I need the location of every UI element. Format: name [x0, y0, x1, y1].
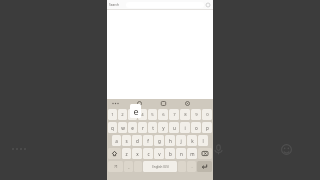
button[interactable]: b: [165, 148, 175, 159]
button[interactable]: 5: [148, 109, 157, 120]
button[interactable]: Voice input: [210, 141, 226, 157]
staticText: m: [190, 151, 195, 157]
button[interactable]: GIF: [159, 99, 168, 108]
button[interactable]: e: [128, 122, 137, 133]
staticText: English (US): [152, 165, 169, 169]
button[interactable]: r: [138, 122, 147, 133]
button[interactable]: More options: [111, 99, 120, 108]
staticText: f: [147, 138, 149, 144]
staticText: u: [173, 125, 176, 131]
staticText: q: [111, 125, 114, 131]
staticText: p: [206, 125, 209, 131]
staticText: 5: [151, 112, 154, 118]
button[interactable]: o: [191, 122, 201, 133]
button[interactable]: Shift: [108, 148, 121, 159]
staticText: x: [136, 151, 139, 157]
staticText: 2: [121, 112, 124, 118]
button[interactable]: f: [143, 135, 153, 146]
button[interactable]: l: [198, 135, 208, 146]
button[interactable]: z: [122, 148, 131, 159]
button[interactable]: Settings: [183, 99, 192, 108]
button[interactable]: 9: [191, 109, 201, 120]
staticText: 4: [141, 112, 144, 118]
button[interactable]: Backspace: [198, 148, 212, 159]
staticText: v: [158, 151, 161, 157]
staticText: c: [147, 151, 150, 157]
button[interactable]: Search: [109, 3, 125, 7]
staticText: 6: [162, 112, 165, 118]
staticText: ,: [128, 164, 130, 169]
button[interactable]: p: [202, 122, 212, 133]
button[interactable]: English (US): [143, 161, 177, 172]
button[interactable]: q: [108, 122, 117, 133]
button[interactable]: g: [154, 135, 164, 146]
button[interactable]: 3: [128, 109, 137, 120]
button[interactable]: Stickers: [135, 99, 144, 108]
button[interactable]: 0: [202, 109, 212, 120]
staticText: j: [180, 138, 182, 144]
button[interactable]: 1: [108, 109, 117, 120]
staticText: z: [125, 151, 128, 157]
button[interactable]: v: [154, 148, 164, 159]
button[interactable]: x: [132, 148, 142, 159]
staticText: t: [152, 125, 154, 131]
staticText: 8: [184, 112, 187, 118]
button[interactable]: Close: [205, 2, 211, 8]
staticText: s: [125, 138, 128, 144]
staticText: 0: [206, 112, 209, 118]
button[interactable]: j: [176, 135, 186, 146]
staticText: r: [142, 125, 144, 131]
staticText: i: [184, 125, 186, 131]
button[interactable]: n: [176, 148, 186, 159]
staticText: a: [115, 138, 118, 144]
staticText: w: [121, 125, 125, 131]
staticText: 7: [173, 112, 176, 118]
staticText: .: [191, 164, 193, 169]
staticText: 1: [111, 112, 114, 118]
staticText: Search: [109, 3, 120, 7]
button[interactable]: m: [187, 148, 197, 159]
button[interactable]: d: [132, 135, 142, 146]
staticText: y: [162, 125, 165, 131]
staticText: ?1: [114, 164, 118, 169]
staticText: h: [169, 138, 172, 144]
staticText: n: [180, 151, 183, 157]
button[interactable]: 8: [180, 109, 190, 120]
button[interactable]: Emoji: [278, 141, 294, 157]
staticText: e: [133, 105, 139, 117]
button[interactable]: t: [148, 122, 157, 133]
button[interactable]: 6: [158, 109, 168, 120]
button[interactable]: u: [169, 122, 179, 133]
button[interactable]: 7: [169, 109, 179, 120]
staticText: b: [169, 151, 172, 157]
button[interactable]: i: [180, 122, 190, 133]
staticText: d: [136, 138, 139, 144]
button[interactable]: ?1: [108, 161, 123, 172]
button[interactable]: a: [112, 135, 121, 146]
staticText: 9: [195, 112, 198, 118]
staticText: g: [158, 138, 161, 144]
button[interactable]: 4: [138, 109, 147, 120]
button[interactable]: y: [158, 122, 168, 133]
button[interactable]: k: [187, 135, 197, 146]
staticText: e: [131, 125, 134, 131]
button[interactable]: c: [143, 148, 153, 159]
button[interactable]: h: [165, 135, 175, 146]
staticText: o: [195, 125, 198, 131]
staticText: k: [191, 138, 194, 144]
button[interactable]: Enter: [197, 161, 212, 172]
button[interactable]: Recent apps: [10, 142, 28, 156]
button[interactable]: 2: [118, 109, 127, 120]
staticText: l: [202, 138, 204, 144]
button[interactable]: s: [122, 135, 131, 146]
button[interactable]: w: [118, 122, 127, 133]
